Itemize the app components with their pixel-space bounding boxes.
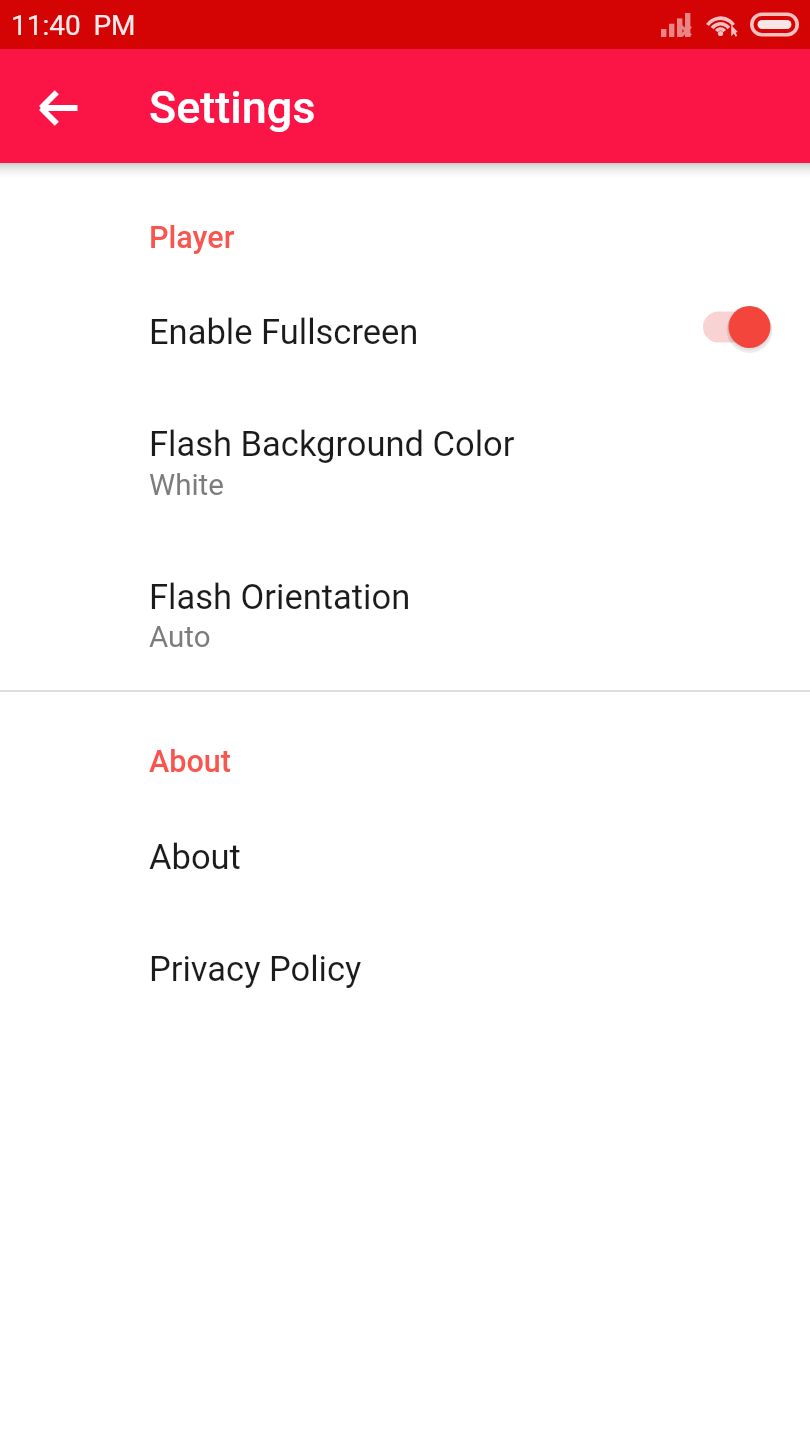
button[interactable]: Privacy Policy (0, 919, 810, 997)
staticText: Enable Fullscreen (149, 312, 419, 352)
staticText: Player (149, 220, 235, 256)
staticText: Flash Background Color (149, 424, 515, 464)
staticText: 11:40 PM (11, 9, 136, 42)
button[interactable]: About (0, 807, 810, 885)
button[interactable]: Flash Orientation (0, 547, 810, 665)
staticText: About (149, 837, 241, 877)
button[interactable]: Flash Background Color (0, 394, 810, 512)
staticText: Privacy Policy (149, 949, 362, 989)
staticText: Auto (149, 620, 211, 655)
staticText: White (149, 468, 224, 503)
staticText: Settings (149, 81, 316, 134)
staticText: Flash Orientation (149, 577, 411, 617)
button[interactable]: Enable Fullscreen (0, 282, 810, 360)
staticText: About (149, 744, 231, 780)
button[interactable]: Back (23, 72, 95, 144)
